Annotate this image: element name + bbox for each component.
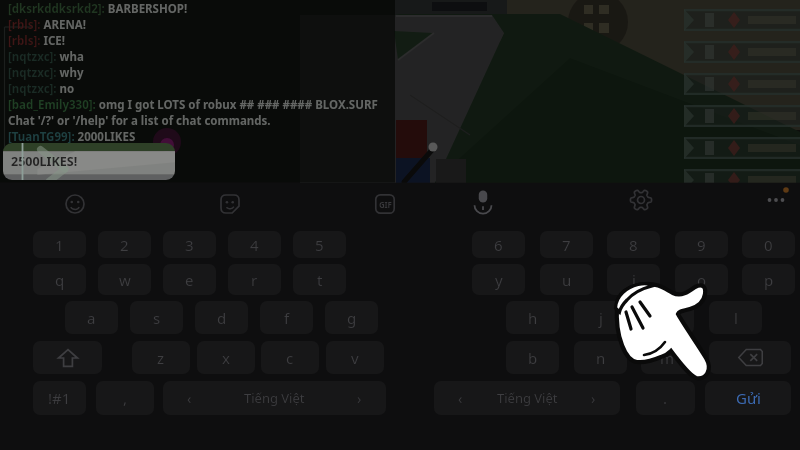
button[interactable]: Emoji	[55, 187, 95, 221]
staticText: s	[153, 308, 161, 328]
staticText: n	[596, 348, 606, 368]
staticText: v	[351, 348, 359, 368]
staticText: l	[734, 308, 738, 328]
button[interactable]: m	[641, 341, 694, 374]
button[interactable]: n	[574, 341, 627, 374]
staticText: o	[697, 270, 707, 290]
button[interactable]: Shift	[33, 341, 102, 374]
button[interactable]: z	[132, 341, 190, 374]
staticText: [TuanTG99]: 2000LIKES	[8, 129, 136, 145]
button[interactable]: 4	[228, 231, 281, 258]
button[interactable]: 2	[98, 231, 151, 258]
staticText: [rbls]: ARENA!	[8, 17, 86, 33]
staticText: d	[217, 308, 227, 328]
staticText: y	[495, 270, 503, 290]
button[interactable]: GIF	[365, 187, 405, 221]
button[interactable]: v	[326, 341, 384, 374]
button[interactable]: Backspace	[709, 341, 791, 374]
button[interactable]: o	[675, 264, 728, 295]
button[interactable]: k	[641, 301, 694, 334]
staticText: h	[528, 308, 538, 328]
button[interactable]: Settings	[621, 183, 661, 217]
button[interactable]: ‹	[434, 381, 620, 415]
staticText: 9	[697, 235, 706, 255]
staticText: ,	[123, 388, 128, 408]
staticText: 0	[764, 235, 773, 255]
button[interactable]: f	[260, 301, 313, 334]
button[interactable]: u	[540, 264, 593, 295]
staticText: Chat '/?' or '/help' for a list of chat …	[8, 113, 271, 129]
button[interactable]: e	[163, 264, 216, 295]
button[interactable]: q	[33, 264, 86, 295]
button[interactable]: 8	[607, 231, 660, 258]
button[interactable]: s	[130, 301, 183, 334]
button[interactable]: d	[195, 301, 248, 334]
button[interactable]: y	[472, 264, 525, 295]
staticText: g	[347, 308, 357, 328]
button[interactable]: More options	[756, 183, 796, 217]
button[interactable]: t	[293, 264, 346, 295]
staticText: q	[55, 270, 65, 290]
staticText: Tiếng Việt	[244, 389, 305, 407]
staticText: u	[562, 270, 572, 290]
staticText: b	[528, 348, 538, 368]
staticText: 6	[494, 235, 503, 255]
button[interactable]: a	[65, 301, 118, 334]
staticText: x	[222, 348, 230, 368]
staticText: GIF	[379, 199, 392, 210]
button[interactable]: c	[261, 341, 319, 374]
button[interactable]: ‹	[163, 381, 386, 415]
staticText: m	[660, 348, 675, 368]
button[interactable]: i	[607, 264, 660, 295]
button[interactable]: g	[325, 301, 378, 334]
button[interactable]: Gửi	[705, 381, 791, 415]
staticText: p	[764, 270, 774, 290]
staticText: 1	[55, 235, 64, 255]
staticText: w	[119, 270, 131, 290]
staticText: ›	[591, 389, 596, 408]
staticText: !#1	[48, 388, 71, 408]
button[interactable]: 7	[540, 231, 593, 258]
staticText: 2500LIKES!	[11, 153, 78, 170]
button[interactable]: j	[574, 301, 627, 334]
staticText: ‹	[187, 389, 192, 408]
button[interactable]: p	[742, 264, 795, 295]
button[interactable]: 9	[675, 231, 728, 258]
staticText: t	[317, 270, 323, 290]
staticText: ‹	[458, 389, 463, 408]
button[interactable]: 2500LIKES!	[3, 143, 175, 180]
button[interactable]: 6	[472, 231, 525, 258]
button[interactable]: !#1	[33, 381, 86, 415]
button[interactable]: 1	[33, 231, 86, 258]
staticText: [nqtzxc]: wha	[8, 49, 84, 65]
staticText: 3	[185, 235, 194, 255]
staticText: 2	[120, 235, 129, 255]
button[interactable]: b	[506, 341, 559, 374]
staticText: r	[251, 270, 258, 290]
button[interactable]: Sticker	[210, 187, 250, 221]
staticText: i	[632, 270, 636, 290]
staticText: a	[87, 308, 96, 328]
button[interactable]: h	[506, 301, 559, 334]
button[interactable]: 0	[742, 231, 795, 258]
staticText: [dksrkddksrkd2]: BARBERSHOP!	[8, 1, 188, 17]
staticText: 4	[250, 235, 259, 255]
staticText: z	[157, 348, 165, 368]
button[interactable]: x	[197, 341, 255, 374]
button[interactable]: Voice input	[463, 183, 503, 217]
staticText: [nqtzxc]: why	[8, 65, 84, 81]
staticText: ›	[357, 389, 362, 408]
button[interactable]: w	[98, 264, 151, 295]
staticText: c	[286, 348, 294, 368]
staticText: f	[284, 308, 290, 328]
staticText: [nqtzxc]: no	[8, 81, 75, 97]
staticText: j	[599, 308, 603, 328]
button[interactable]: 3	[163, 231, 216, 258]
staticText: [rbls]: ICE!	[8, 33, 65, 49]
button[interactable]: 5	[293, 231, 346, 258]
